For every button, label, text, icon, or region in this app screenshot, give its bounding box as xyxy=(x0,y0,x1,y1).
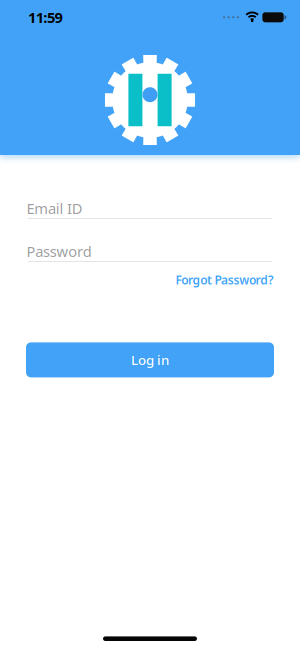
staticText: Email ID xyxy=(26,198,83,218)
staticText: 11:59 xyxy=(28,8,63,27)
button[interactable]: Log in xyxy=(26,342,274,377)
staticText: Log in xyxy=(131,351,169,369)
staticText: Forgot Password? xyxy=(175,272,274,288)
button[interactable]: Email ID xyxy=(28,198,272,219)
button[interactable]: Password xyxy=(28,241,272,262)
staticText: Password xyxy=(26,241,92,261)
button[interactable]: Forgot Password? xyxy=(175,272,274,288)
